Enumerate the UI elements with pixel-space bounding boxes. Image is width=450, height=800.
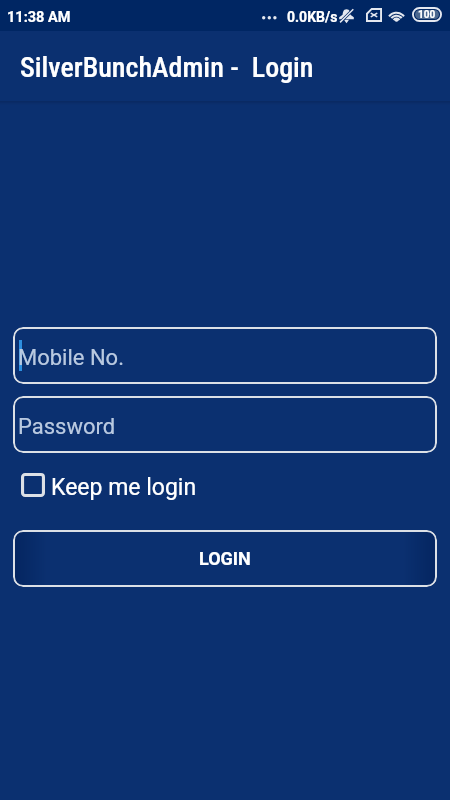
other: No SIM card <box>366 8 382 22</box>
staticText: Password <box>18 414 116 440</box>
button[interactable]: Password <box>13 396 437 453</box>
button[interactable]: Keep me login <box>12 466 212 504</box>
staticText: SilverBunchAdmin - Login <box>20 51 314 84</box>
staticText: Keep me login <box>51 474 197 501</box>
button[interactable]: Mobile No. <box>13 327 437 384</box>
staticText: 11:38 AM <box>7 9 71 26</box>
other: Silent mode <box>338 8 355 24</box>
button[interactable]: LOGIN <box>13 530 437 587</box>
other: Battery 100 percent <box>412 7 442 22</box>
staticText: Mobile No. <box>18 345 124 371</box>
staticText: LOGIN <box>199 548 251 569</box>
other: Wi-Fi <box>387 8 406 23</box>
staticText: 100 <box>418 9 436 21</box>
staticText: 0.0KB/s <box>287 9 338 25</box>
